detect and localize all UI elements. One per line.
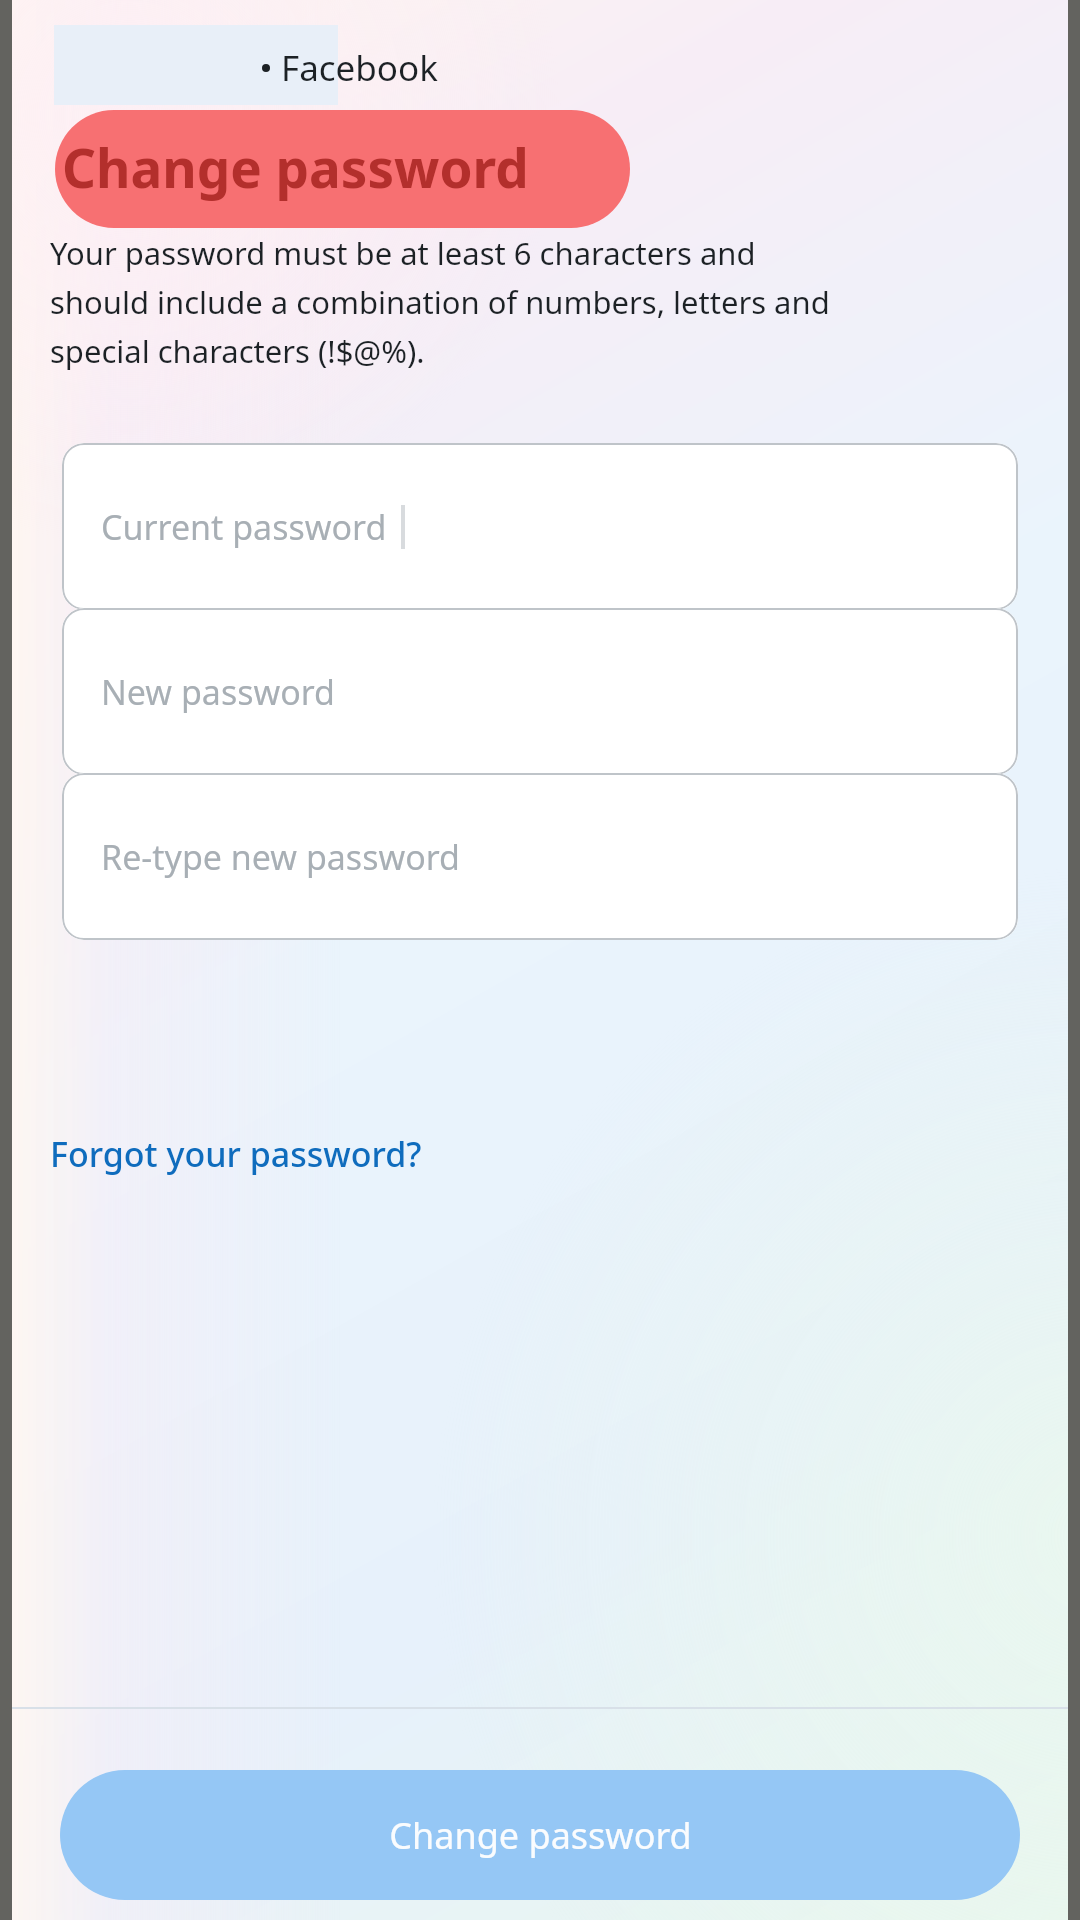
button[interactable]: Re-type new password [62,773,1018,940]
staticText: Your password must be at least 6 charact… [50,232,850,373]
staticText: Change password [62,131,529,203]
button[interactable]: Forgot your password? [38,1116,434,1192]
staticText: Forgot your password? [50,1131,422,1177]
button[interactable]: Current password [62,443,1018,610]
staticText: Re-type new password [101,834,461,880]
staticText: Facebook [281,44,438,92]
button[interactable]: Facebook [262,42,438,94]
staticText: Current password [101,504,387,550]
button[interactable]: Change password [60,1770,1020,1900]
staticText: Change password [389,1811,692,1860]
button[interactable]: New password [62,608,1018,775]
staticText: New password [101,669,336,715]
